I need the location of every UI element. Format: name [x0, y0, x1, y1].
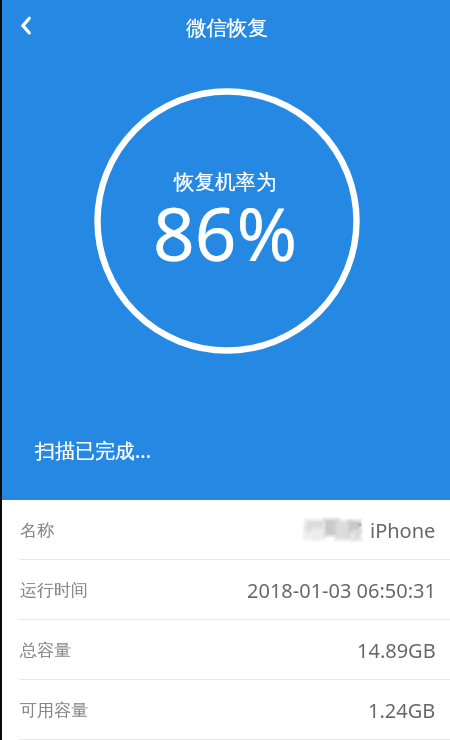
staticText: 可用容量 — [20, 700, 88, 721]
button[interactable]: 运行时间 — [0, 560, 450, 620]
staticText: 扫描已完成... — [35, 437, 152, 464]
staticText: 名称 — [20, 520, 54, 541]
button[interactable]: Back — [5, 3, 53, 51]
staticText: 2018-01-03 06:50:31 — [247, 577, 436, 604]
staticText: 总容量 — [20, 640, 71, 661]
staticText: 86% — [153, 183, 298, 282]
button[interactable]: 可用容量 — [0, 680, 450, 740]
staticText: 1.24GB — [368, 697, 436, 724]
button[interactable]: 总容量 — [0, 620, 450, 680]
staticText: iPhone — [370, 517, 436, 544]
staticText: 14.89GB — [357, 637, 436, 664]
staticText: 运行时间 — [20, 580, 88, 601]
button[interactable]: 名称 — [0, 500, 450, 560]
staticText: 微信恢复 — [186, 15, 268, 41]
staticText: 恢复机率为 — [174, 169, 277, 195]
